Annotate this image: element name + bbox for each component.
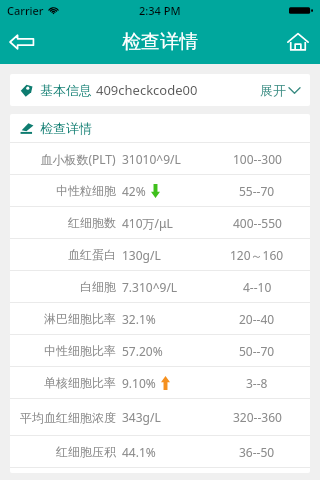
staticText: 中性粒细胞 <box>56 183 116 198</box>
button[interactable]: 平均血红细胞浓度 <box>10 399 310 435</box>
button[interactable]: 血小板数(PLT) <box>10 143 310 174</box>
staticText: 20--40 <box>239 311 275 327</box>
staticText: 409checkcode00 <box>96 81 198 99</box>
staticText: 7.310^9/L <box>122 279 178 295</box>
staticText: 检查详情 <box>122 30 198 54</box>
staticText: 3--8 <box>246 375 268 391</box>
staticText: 343g/L <box>122 409 161 425</box>
staticText: 基本信息 <box>40 82 92 98</box>
staticText: 血小板数(PLT) <box>40 151 116 167</box>
staticText: 检查详情 <box>40 120 92 136</box>
staticText: 中性细胞比率 <box>44 343 116 358</box>
staticText: 120～160 <box>230 247 284 263</box>
staticText: 单核细胞比率 <box>44 375 116 390</box>
button[interactable]: Home <box>276 20 320 64</box>
staticText: 36--50 <box>239 444 275 460</box>
staticText: 9.10% <box>122 375 156 391</box>
button[interactable]: 基本信息 <box>10 74 310 106</box>
staticText: Carrier <box>7 3 44 18</box>
staticText: 42% <box>122 183 146 199</box>
button[interactable]: 中性粒细胞 <box>10 175 310 206</box>
staticText: 320--360 <box>233 409 282 425</box>
button[interactable]: 红细胞数 <box>10 207 310 238</box>
staticText: 100--300 <box>233 151 282 167</box>
staticText: 2:34 PM <box>139 3 181 18</box>
staticText: 31010^9/L <box>122 151 181 167</box>
staticText: 血红蛋白 <box>68 247 116 262</box>
staticText: 55--70 <box>239 183 275 199</box>
staticText: 4--10 <box>243 279 272 295</box>
staticText: 44.1% <box>122 444 156 460</box>
staticText: 红细胞压积 <box>56 444 116 459</box>
staticText: 130g/L <box>122 247 161 263</box>
button[interactable]: 红细胞压积 <box>10 436 310 467</box>
staticText: 白细胞 <box>80 279 116 294</box>
staticText: 32.1% <box>122 311 156 327</box>
staticText: 400--550 <box>233 215 282 231</box>
button[interactable]: 白细胞 <box>10 271 310 302</box>
button[interactable]: 单核细胞比率 <box>10 367 310 398</box>
staticText: 50--70 <box>239 343 275 359</box>
button[interactable]: 中性细胞比率 <box>10 335 310 366</box>
staticText: 57.20% <box>122 343 163 359</box>
staticText: 展开 <box>260 82 286 98</box>
staticText: 红细胞数 <box>68 215 116 230</box>
staticText: 平均血红细胞浓度 <box>20 410 116 425</box>
button[interactable]: 血红蛋白 <box>10 239 310 270</box>
button[interactable]: 淋巴细胞比率 <box>10 303 310 334</box>
button[interactable]: Back <box>0 20 44 64</box>
staticText: 410万/μL <box>122 215 173 231</box>
staticText: 淋巴细胞比率 <box>44 311 116 326</box>
